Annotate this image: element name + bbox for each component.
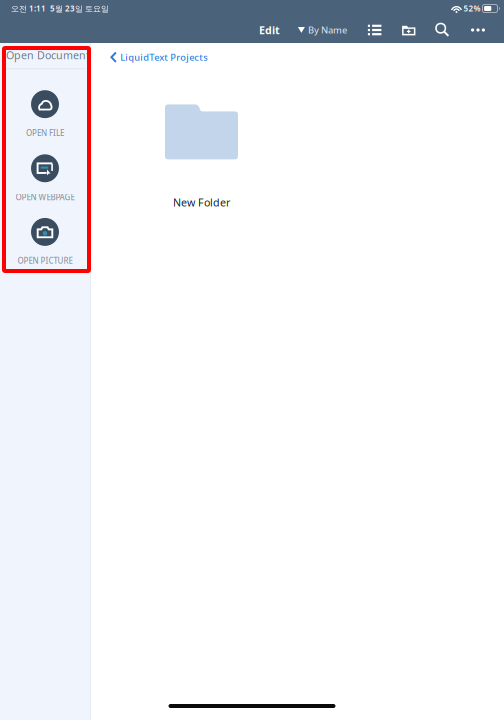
button[interactable]: Edit (250, 18, 282, 42)
staticText: Open Document (6, 48, 90, 62)
button[interactable]: OPEN WEBPAGE (0, 154, 90, 202)
button[interactable]: List view (358, 20, 391, 40)
staticText: LiquidText Projects (120, 51, 208, 63)
staticText: OPEN WEBPAGE (15, 192, 74, 202)
staticText: 52% (463, 3, 480, 14)
staticText: Edit (259, 23, 280, 37)
staticText: By Name (308, 24, 347, 36)
button[interactable]: OPEN PICTURE (0, 218, 90, 266)
button[interactable]: OPEN FILE (0, 90, 90, 138)
staticText: OPEN PICTURE (17, 255, 72, 266)
button[interactable]: More (459, 19, 493, 41)
staticText: New Folder (173, 195, 230, 210)
button[interactable]: Search (426, 18, 459, 41)
staticText: OPEN FILE (26, 128, 64, 138)
staticText: 오전 1:11 5월 23일 토요일 (11, 3, 109, 14)
button[interactable]: LiquidText Projects (110, 48, 208, 66)
button[interactable]: New Folder (165, 104, 238, 210)
button[interactable]: By Name (282, 19, 358, 41)
button[interactable]: New folder (391, 19, 426, 41)
